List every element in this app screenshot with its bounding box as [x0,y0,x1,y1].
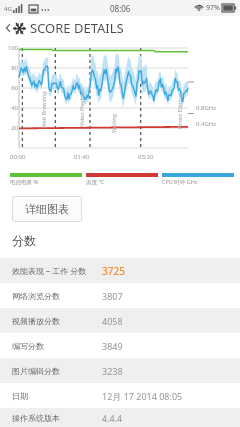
staticText: 操作系统版本 [12,413,92,423]
staticText: 60 [1,84,18,92]
staticText: 100 [1,44,18,52]
staticText: 4.4.4 [102,412,123,424]
staticText: 3725 [102,264,125,278]
staticText: 温度 ℃ [86,178,104,186]
button[interactable]: 编写分数 [0,333,240,358]
staticText: 20 [1,124,18,132]
button[interactable]: 详细图表 [12,196,82,222]
staticText: Video Playback [78,88,85,127]
staticText: Web Browsing [39,90,46,128]
staticText: 03:20 [138,153,154,161]
staticText: 日期 [12,391,92,401]
staticText: 4058 [102,315,123,327]
staticText: 97% [206,3,220,13]
staticText: 00:00 [10,153,26,161]
staticText: SCORE DETAILS [30,19,124,37]
button[interactable]: 视频播放分数 [0,308,240,333]
staticText: 3807 [102,290,123,302]
staticText: 12月 17 2014 08:05 [102,390,183,402]
other: Back [4,21,12,35]
button[interactable]: Back [0,16,240,40]
staticText: 3849 [102,340,123,352]
button[interactable]: 图片编辑分数 [0,358,240,383]
staticText: 效能表现 – 工作 分数 [12,265,92,276]
staticText: 4G [4,5,12,13]
staticText: 编写分数 [12,341,92,351]
staticText: 01:40 [74,153,90,161]
staticText: Photo Editing [176,94,183,129]
button[interactable]: 网络浏览分数 [0,283,240,308]
staticText: 40 [1,104,18,112]
button[interactable]: 操作系统版本 [0,408,240,427]
staticText: Writing [110,114,117,133]
staticText: 电池电量 % [10,178,39,186]
button[interactable]: 效能表现 – 工作 分数 [0,258,240,283]
staticText: 网络浏览分数 [12,291,92,301]
staticText: 0.8GHz [196,104,217,112]
staticText: 08:06 [110,3,131,14]
staticText: 0.4GHz [196,120,217,128]
staticText: 图片编辑分数 [12,366,92,376]
staticText: CPU 时钟 GHz [162,178,198,186]
button[interactable]: 日期 [0,383,240,408]
staticText: 3238 [102,365,123,377]
staticText: 视频播放分数 [12,316,92,326]
staticText: 分数 [12,233,36,248]
staticText: 详细图表 [25,202,69,216]
staticText: 80 [1,64,18,72]
